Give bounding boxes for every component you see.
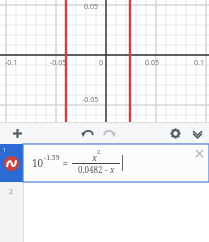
button[interactable]: Undo xyxy=(76,122,98,144)
button[interactable]: Collapse xyxy=(186,122,208,144)
button[interactable]: Add expression xyxy=(6,122,28,144)
staticText: x xyxy=(92,151,97,163)
staticText: 10 xyxy=(32,156,44,170)
staticText: 2 xyxy=(97,148,101,156)
staticText: 1 xyxy=(3,147,6,154)
staticText: -0.1 xyxy=(5,58,18,68)
staticText: 0.05 xyxy=(84,2,98,12)
staticText: = xyxy=(60,156,71,170)
staticText: -0.05 xyxy=(82,95,99,105)
staticText: 0.05 xyxy=(145,58,159,68)
button[interactable]: 1 xyxy=(0,144,209,182)
button[interactable]: Redo xyxy=(98,122,120,144)
staticText: 2 xyxy=(9,187,14,197)
staticText: x xyxy=(110,164,115,175)
staticText: - xyxy=(105,164,110,175)
button[interactable]: 2 xyxy=(0,182,23,202)
staticText: -1.59 xyxy=(44,153,60,163)
staticText: -0.05 xyxy=(50,58,67,68)
staticText: 0 xyxy=(99,58,104,68)
staticText: 0.1 xyxy=(194,58,204,68)
button[interactable]: Settings xyxy=(164,122,186,144)
button[interactable]: Delete expression xyxy=(192,146,206,160)
staticText: 0.0482 xyxy=(78,164,105,175)
